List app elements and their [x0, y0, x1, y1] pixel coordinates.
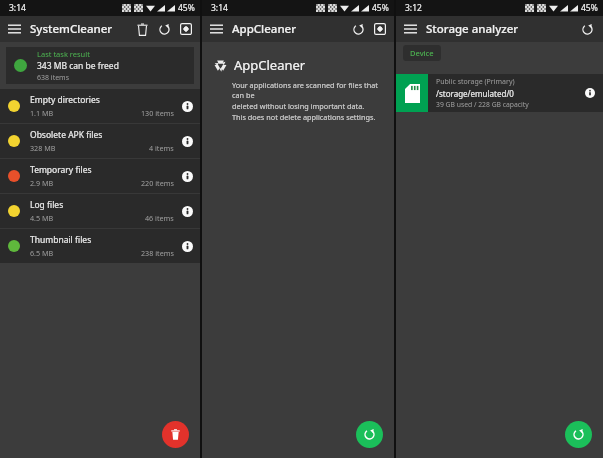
button[interactable]: Temporary files	[0, 159, 200, 193]
staticText: 638 items	[37, 73, 70, 83]
staticText: 2.9 MB	[30, 178, 54, 188]
staticText: 3:12	[405, 2, 422, 14]
button[interactable]: Delete all	[162, 421, 189, 448]
staticText: 45%	[372, 2, 389, 14]
staticText: AppCleaner	[232, 21, 347, 37]
staticText: Storage analyzer	[426, 21, 576, 37]
staticText: Your applications are scanned for files …	[232, 80, 386, 122]
staticText: 238 items	[141, 248, 174, 258]
button[interactable]: Info	[585, 88, 595, 98]
staticText: 4 items	[149, 143, 174, 153]
button[interactable]: Info	[182, 241, 193, 252]
staticText: Empty directories	[30, 94, 100, 106]
button[interactable]: Obsolete APK files	[0, 124, 200, 158]
staticText: 4.5 MB	[30, 213, 54, 223]
button[interactable]: Settings	[369, 18, 391, 40]
button[interactable]: Thumbnail files	[0, 229, 200, 263]
staticText: 3:14	[211, 2, 228, 14]
button[interactable]: Refresh	[576, 18, 598, 40]
button[interactable]: Open navigation menu	[204, 17, 228, 41]
staticText: 1.1 MB	[30, 108, 54, 118]
staticText: 39 GB used / 228 GB capacity	[436, 100, 529, 109]
staticText: 130 items	[141, 108, 174, 118]
staticText: Log files	[30, 199, 64, 211]
button[interactable]: Refresh storage	[565, 421, 592, 448]
staticText: 45%	[581, 2, 598, 14]
staticText: Public storage (Primary)	[436, 77, 515, 87]
button[interactable]: Refresh	[153, 18, 175, 40]
staticText: 343 MB can be freed	[37, 60, 119, 72]
staticText: Temporary files	[30, 164, 92, 176]
button[interactable]: Delete	[131, 18, 153, 40]
button[interactable]: Settings	[175, 18, 197, 40]
button[interactable]: Info	[182, 206, 193, 217]
staticText: 45%	[178, 2, 195, 14]
staticText: Obsolete APK files	[30, 129, 103, 141]
button[interactable]: Open navigation menu	[398, 17, 422, 41]
button[interactable]: Info	[182, 136, 193, 147]
staticText: Last task result	[37, 49, 90, 59]
button[interactable]: Refresh	[347, 18, 369, 40]
staticText: 3:14	[9, 2, 26, 14]
button[interactable]: Log files	[0, 194, 200, 228]
staticText: 220 items	[141, 178, 174, 188]
button[interactable]: Open navigation menu	[2, 17, 26, 41]
staticText: Device	[410, 48, 434, 58]
staticText: 46 items	[145, 213, 174, 223]
staticText: /storage/emulated/0	[436, 88, 514, 99]
staticText: 328 MB	[30, 143, 56, 153]
button[interactable]: Scan	[356, 421, 383, 448]
staticText: Thumbnail files	[30, 234, 92, 246]
staticText: SystemCleaner	[30, 21, 131, 37]
button[interactable]: Public storage (Primary)	[396, 74, 603, 112]
button[interactable]: Empty directories	[0, 89, 200, 123]
button[interactable]: Device	[403, 45, 441, 61]
button[interactable]: Last task result	[6, 47, 194, 84]
button[interactable]: Info	[182, 101, 193, 112]
staticText: AppCleaner	[234, 56, 306, 74]
button[interactable]: Info	[182, 171, 193, 182]
staticText: 6.5 MB	[30, 248, 54, 258]
